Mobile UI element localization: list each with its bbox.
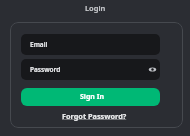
button[interactable]: Email (21, 34, 160, 55)
button[interactable]: Sign In (21, 88, 160, 106)
staticText: Sign In (80, 92, 105, 102)
button[interactable]: Password (21, 59, 160, 80)
staticText: Login (85, 3, 106, 13)
staticText: Email (30, 40, 48, 49)
button[interactable]: Forgot Password? (62, 111, 127, 121)
staticText: Password (30, 65, 61, 74)
